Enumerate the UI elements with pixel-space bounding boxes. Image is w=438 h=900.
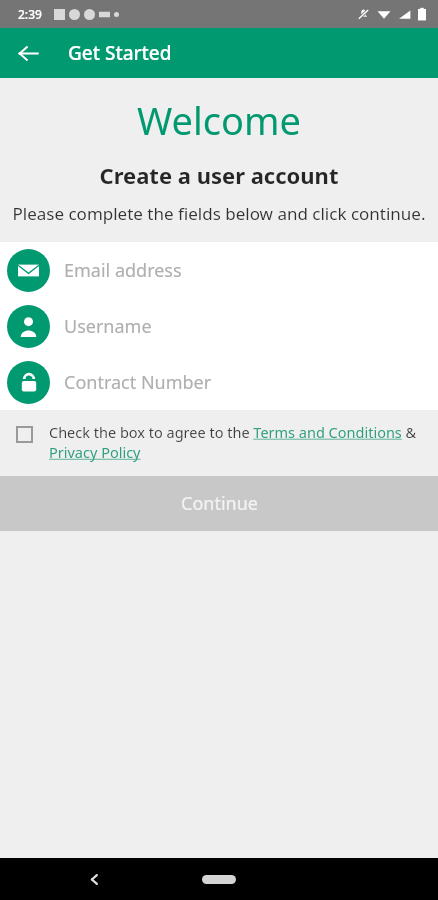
staticText: Please complete the fields below and cli…	[10, 202, 428, 225]
staticText: Create a user account	[0, 160, 438, 190]
staticText: Contract Number	[64, 370, 212, 395]
button[interactable]: Agree to terms checkbox	[0, 410, 438, 476]
staticText: Email address	[64, 258, 182, 283]
button[interactable]: Email address	[0, 242, 438, 298]
staticText: Continue	[181, 491, 258, 516]
other: Agree to terms checkbox	[16, 426, 33, 443]
button[interactable]: Continue	[0, 476, 438, 531]
staticText: Username	[64, 314, 152, 339]
button[interactable]: Back	[8, 33, 48, 73]
staticText: Check the box to agree to the Terms and …	[49, 422, 420, 462]
staticText: 2:39	[18, 6, 42, 22]
button[interactable]: Username	[0, 298, 438, 354]
staticText: Get Started	[68, 40, 172, 66]
button[interactable]: Back	[78, 863, 110, 895]
staticText: Welcome	[0, 94, 438, 146]
button[interactable]: Home	[192, 861, 246, 897]
button[interactable]: Contract Number	[0, 354, 438, 410]
